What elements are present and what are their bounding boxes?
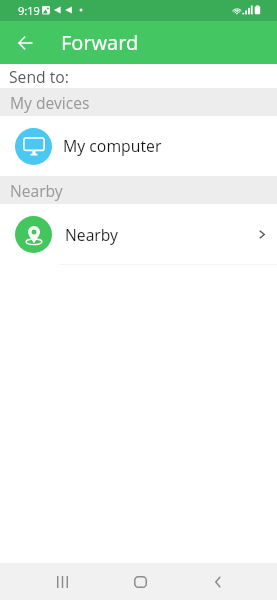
button[interactable]: Back <box>179 563 257 600</box>
staticText: Nearby <box>65 224 118 245</box>
staticText: Nearby <box>10 180 63 201</box>
staticText: My devices <box>10 92 90 113</box>
staticText: My computer <box>63 135 162 157</box>
button[interactable]: Home <box>101 563 179 600</box>
button[interactable]: Navigate up <box>7 25 43 61</box>
button[interactable]: My computer <box>0 116 277 176</box>
staticText: Send to: <box>9 66 69 87</box>
button[interactable]: Recent apps <box>23 563 101 600</box>
button[interactable]: Nearby <box>0 204 277 264</box>
staticText: 9:19 <box>18 3 40 18</box>
staticText: Forward <box>61 29 139 56</box>
